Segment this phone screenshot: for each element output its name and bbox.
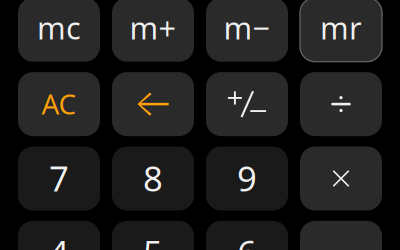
button[interactable]: All clear: [18, 72, 100, 136]
button[interactable]: Delete: [112, 72, 194, 136]
staticText: AC: [41, 85, 76, 122]
button[interactable]: Multiply: [300, 146, 382, 210]
staticText: 8: [143, 155, 163, 201]
button[interactable]: Memory recall: [300, 0, 382, 62]
button[interactable]: Memory subtract: [206, 0, 288, 62]
staticText: 5: [143, 229, 163, 250]
staticText: mc: [37, 7, 81, 48]
staticText: 4: [49, 229, 69, 250]
button[interactable]: Memory clear: [18, 0, 100, 62]
button[interactable]: Plus minus: [206, 72, 288, 136]
staticText: 7: [49, 155, 69, 201]
button[interactable]: Memory add: [112, 0, 194, 62]
button[interactable]: Divide: [300, 72, 382, 136]
staticText: 9: [237, 155, 257, 201]
button[interactable]: 9: [206, 146, 288, 210]
staticText: m+: [129, 7, 176, 48]
button[interactable]: 6: [206, 221, 288, 250]
staticText: 6: [237, 229, 257, 250]
button[interactable]: 5: [112, 221, 194, 250]
button[interactable]: Subtract: [300, 221, 382, 250]
button[interactable]: 8: [112, 146, 194, 210]
button[interactable]: 4: [18, 221, 100, 250]
staticText: mr: [320, 7, 362, 48]
button[interactable]: 7: [18, 146, 100, 210]
staticText: m−: [223, 7, 270, 48]
